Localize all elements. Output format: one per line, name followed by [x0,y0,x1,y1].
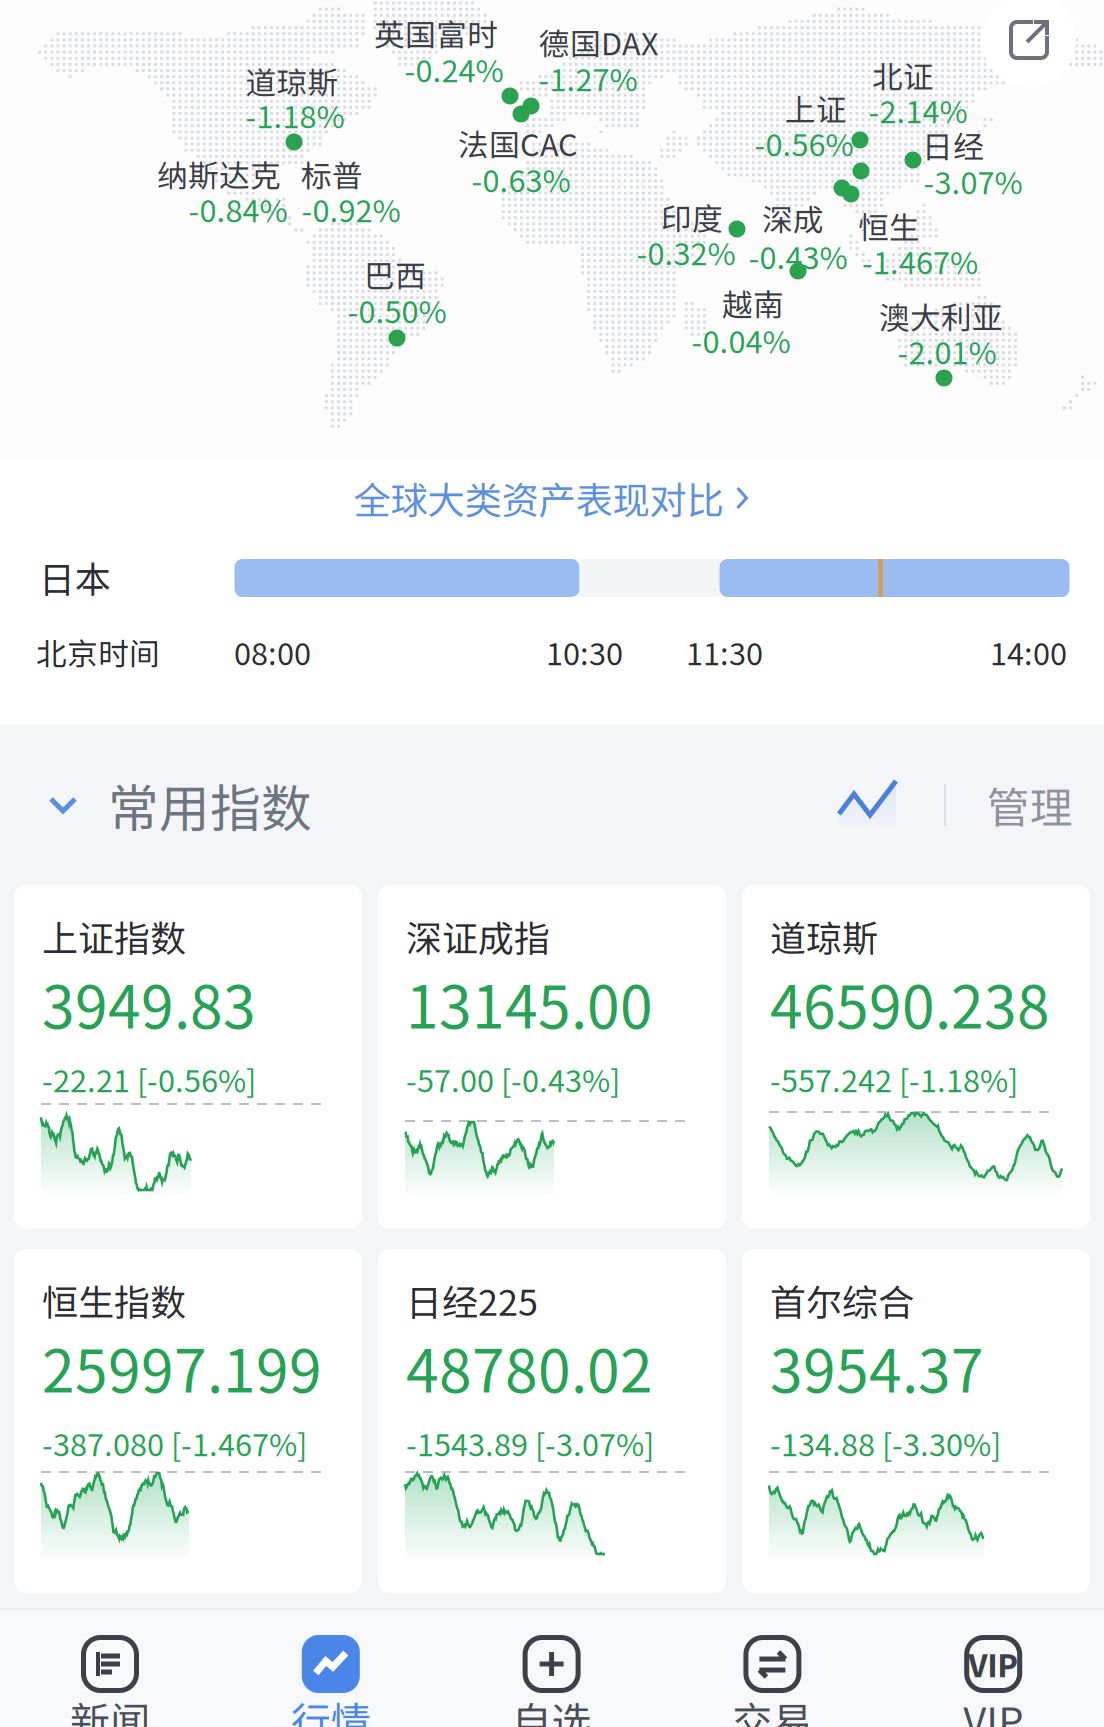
button[interactable]: 常用指数 [45,770,335,840]
button[interactable]: 道琼斯 [742,885,1090,1229]
staticText: -22.21 [-0.56%] [42,1057,256,1101]
staticText: -0.24% [404,47,503,91]
staticText: 08:00 [234,630,311,674]
button[interactable]: 管理 [975,773,1085,837]
staticText: 北证 [872,53,934,97]
staticText: 印度 [661,195,723,239]
staticText: 日本 [39,551,111,603]
staticText: 恒生 [858,204,920,248]
staticText: -1.27% [538,56,637,100]
button[interactable]: 恒生指数 [14,1249,362,1593]
staticText: 11:30 [686,630,763,674]
button[interactable]: 上证指数 [14,885,362,1229]
button[interactable]: 行情 [221,1608,442,1727]
staticText: 常用指数 [108,768,312,842]
staticText: 深证成指 [406,910,550,962]
staticText: -3.07% [923,159,1022,203]
staticText: -0.43% [748,234,847,278]
button[interactable]: 首尔综合 [742,1249,1090,1593]
staticText: -0.63% [471,157,570,201]
staticText: -0.32% [636,230,735,274]
staticText: -2.01% [897,329,996,373]
staticText: 日经225 [406,1274,538,1326]
staticText: 道琼斯 [770,910,878,962]
staticText: 上证指数 [42,910,186,962]
staticText: 3949.83 [42,960,256,1045]
staticText: 深成 [762,196,824,240]
staticText: -0.56% [754,121,853,165]
staticText: 14:00 [990,630,1067,674]
staticText: 46590.238 [770,960,1050,1045]
button[interactable]: 新闻 [0,1608,221,1727]
staticText: 法国CAC [458,121,578,165]
staticText: 英国富时 [374,11,498,55]
staticText: 3954.37 [770,1324,984,1409]
staticText: 行情 [291,1690,371,1727]
staticText: 13145.00 [406,960,653,1045]
staticText: 恒生指数 [42,1274,186,1326]
staticText: -0.84% [188,187,287,231]
staticText: -1.18% [245,93,344,137]
staticText: 首尔综合 [770,1274,914,1326]
staticText: 标普 [301,152,363,196]
button[interactable]: VIP [883,1608,1104,1727]
staticText: -2.14% [868,88,967,132]
staticText: 北京时间 [36,630,160,674]
button[interactable]: 自选 [442,1608,662,1727]
staticText: 纳斯达克 [157,152,281,196]
button[interactable]: 深证成指 [378,885,726,1229]
staticText: -557.242 [-1.18%] [770,1057,1018,1101]
staticText: 德国DAX [539,20,659,64]
staticText: -134.88 [-3.30%] [770,1421,1001,1465]
staticText: 48780.02 [406,1324,653,1409]
staticText: 越南 [722,281,784,325]
staticText: 日经 [922,123,984,167]
staticText: -57.00 [-0.43%] [406,1057,620,1101]
staticText: 管理 [987,774,1073,836]
staticText: 澳大利亚 [879,294,1003,338]
staticText: 交易 [732,1690,812,1727]
staticText: -0.04% [691,318,790,362]
staticText: -0.92% [301,187,400,231]
button[interactable]: 资产走势 [834,776,902,832]
staticText: 巴西 [364,252,426,296]
button[interactable]: 全球大类资产表现对比 [353,472,750,524]
button[interactable]: 日经225 [378,1249,726,1593]
button[interactable]: 交易 [662,1608,883,1727]
staticText: -387.080 [-1.467%] [42,1421,307,1465]
staticText: -0.50% [347,288,446,332]
staticText: 自选 [512,1690,592,1727]
staticText: 上证 [785,86,847,130]
staticText: VIP [963,1690,1023,1727]
staticText: -1.467% [862,239,978,283]
staticText: 新闻 [70,1690,150,1727]
staticText: 25997.199 [42,1324,322,1409]
staticText: -1543.89 [-3.07%] [406,1421,654,1465]
staticText: VIP [968,1642,1018,1686]
staticText: 全球大类资产表现对比 [353,471,723,525]
staticText: 10:30 [546,630,623,674]
staticText: 道琼斯 [245,59,338,103]
button[interactable]: 分享 [982,0,1076,87]
